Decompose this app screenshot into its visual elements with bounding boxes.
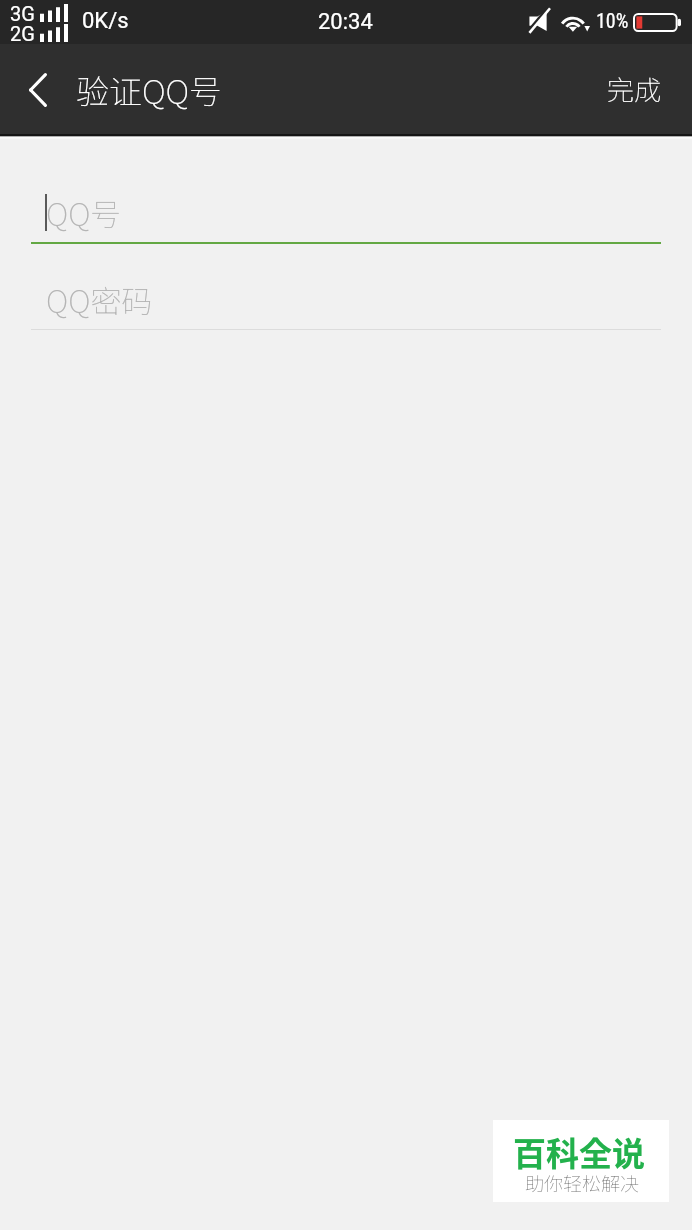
button[interactable]: 完成 (583, 44, 692, 136)
staticText: 完成 (607, 69, 661, 108)
staticText: QQ号 (46, 190, 122, 235)
staticText: QQ密码 (46, 277, 153, 322)
staticText: 0K/s (82, 8, 129, 34)
staticText: 助你轻松解决 (525, 1169, 640, 1197)
staticText: 验证QQ号 (76, 66, 223, 114)
staticText: 3G (10, 2, 35, 25)
staticText: 2G (10, 22, 35, 45)
staticText: 10% (596, 9, 629, 32)
staticText: 百科全说 (513, 1128, 645, 1176)
button[interactable]: Back (8, 60, 66, 122)
button[interactable] (31, 164, 661, 234)
staticText: 20:34 (318, 9, 373, 35)
button[interactable] (31, 251, 661, 321)
